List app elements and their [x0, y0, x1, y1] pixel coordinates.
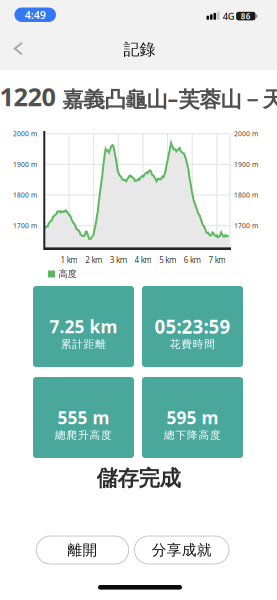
staticText: 記錄 [123, 40, 155, 59]
staticText: 1700 m [234, 221, 258, 230]
staticText: 1800 m [234, 191, 258, 199]
staticText: 2 km [85, 254, 102, 265]
staticText: 5 km [159, 254, 176, 265]
staticText: 05:23:59 [154, 314, 230, 339]
staticText: 1800 m [13, 191, 37, 199]
staticText: 86 [241, 11, 251, 21]
staticText: 2000 m [13, 129, 37, 138]
staticText: 2000 m [234, 129, 258, 138]
staticText: 分享成就 [152, 541, 212, 559]
staticText: 高度 [58, 268, 76, 280]
staticText: 555 m [57, 406, 109, 429]
staticText: 7 km [208, 254, 225, 265]
staticText: 1220 嘉義凸龜山–芙蓉山－天池山 [0, 80, 277, 113]
staticText: 儲存完成 [96, 465, 180, 492]
staticText: 7.25 km [49, 315, 117, 338]
staticText: 4:49 [25, 8, 46, 22]
staticText: 累計距離 [61, 338, 106, 351]
staticText: 總爬升高度 [55, 429, 112, 442]
staticText: 3 km [110, 254, 127, 265]
staticText: 1900 m [13, 160, 37, 169]
staticText: 1 km [61, 254, 77, 265]
staticText: 1900 m [234, 160, 258, 169]
staticText: 總下降高度 [164, 429, 221, 442]
staticText: 4 km [134, 254, 151, 265]
button[interactable]: 分享成就 [134, 536, 229, 564]
staticText: 595 m [166, 406, 218, 429]
staticText: 離開 [67, 541, 97, 559]
button[interactable]: 離開 [36, 536, 129, 564]
staticText: 6 km [184, 254, 201, 265]
staticText: 花費時間 [170, 338, 215, 351]
staticText: 4G [223, 10, 235, 22]
button[interactable] [12, 41, 25, 57]
staticText: 1700 m [13, 221, 37, 230]
